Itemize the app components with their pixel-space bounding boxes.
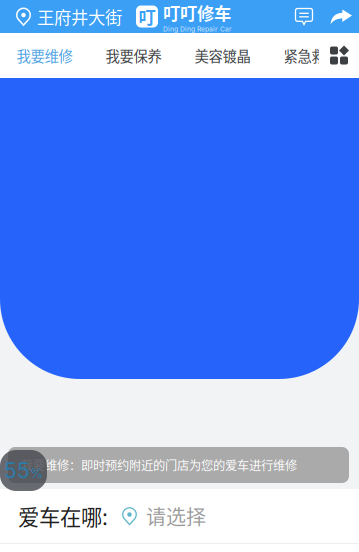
staticText: 叮 — [138, 4, 155, 29]
staticText: 爱车在哪: — [18, 501, 108, 531]
staticText: 美容镀晶 — [194, 45, 250, 66]
button[interactable]: 我要保养 — [89, 33, 178, 78]
button[interactable]: All categories — [319, 33, 359, 78]
staticText: 我要保养 — [105, 45, 161, 66]
staticText: 我要维修 — [16, 45, 72, 66]
staticText: 紧急救援 — [283, 45, 339, 66]
button[interactable]: Messages — [285, 0, 323, 33]
button[interactable]: 美容镀晶 — [178, 33, 267, 78]
button[interactable]: 叮 — [124, 0, 232, 33]
button[interactable]: 王府井大街 — [0, 0, 124, 33]
staticText: 55% — [4, 458, 43, 483]
staticText: 请选择 — [146, 501, 206, 530]
button[interactable]: 紧急救援 — [267, 33, 356, 78]
button[interactable]: Share — [323, 0, 359, 33]
staticText: Ding Ding Repair Car — [163, 25, 232, 33]
staticText: 叮叮修车 — [163, 0, 231, 25]
staticText: 我要维修：即时预约附近的门店为您的爱车进行维修 — [21, 456, 297, 474]
staticText: 王府井大街 — [37, 4, 122, 29]
button[interactable]: 我要维修 — [0, 33, 89, 78]
